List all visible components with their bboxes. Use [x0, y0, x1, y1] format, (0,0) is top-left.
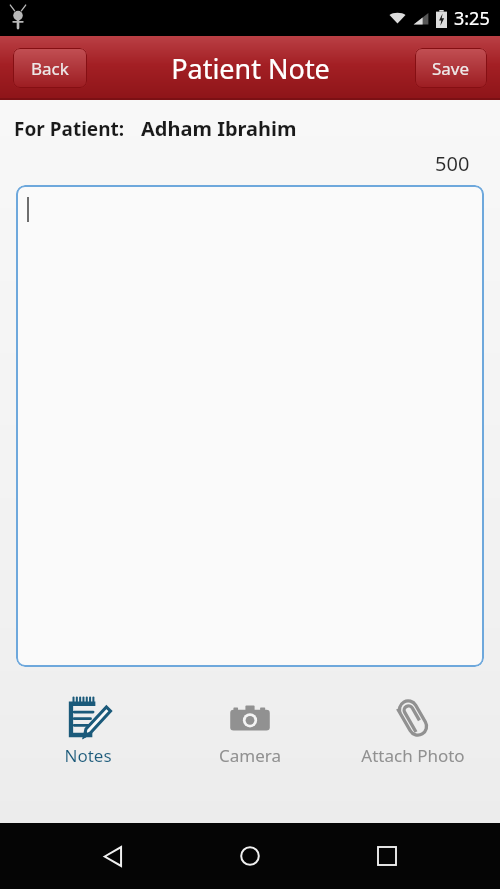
staticText: Attach Photo — [361, 744, 465, 767]
staticText: Patient Note — [171, 50, 330, 87]
staticText: 3:25 — [454, 6, 490, 31]
button[interactable]: Attach Photo — [338, 692, 488, 770]
staticText: Adham Ibrahim — [141, 115, 297, 142]
other: Notes — [65, 695, 111, 741]
other: Camera — [227, 695, 273, 741]
button[interactable]: Recents — [363, 832, 411, 880]
button[interactable]: Home — [226, 832, 274, 880]
button[interactable]: Camera — [175, 692, 325, 770]
staticText: Save — [432, 57, 470, 80]
staticText: Notes — [64, 744, 112, 767]
staticText: Camera — [219, 744, 281, 767]
button[interactable]: Notes — [13, 692, 163, 770]
staticText: 500 — [435, 150, 470, 177]
button[interactable]: Save — [415, 48, 487, 88]
staticText: Back — [31, 57, 69, 80]
button[interactable] — [16, 185, 484, 667]
button[interactable]: Back — [89, 832, 137, 880]
other: Attach Photo — [390, 695, 436, 741]
staticText: For Patient: — [14, 116, 125, 142]
button[interactable]: Back — [13, 48, 87, 88]
